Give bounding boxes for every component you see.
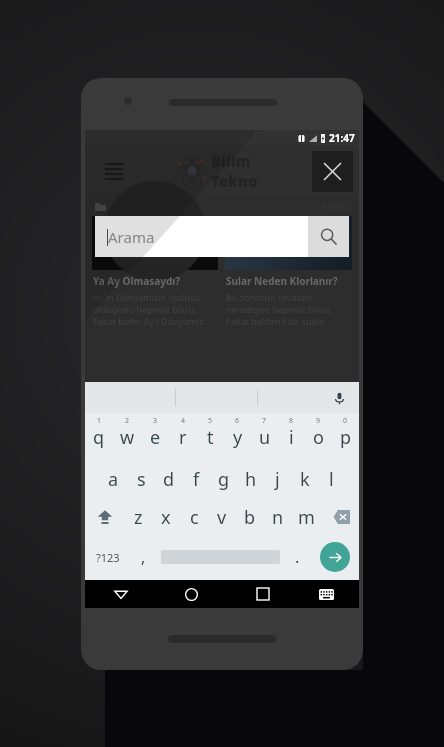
staticText: u xyxy=(259,425,271,450)
staticText: neredeyse hepimiz biliriz. xyxy=(226,303,333,315)
button[interactable]: Back xyxy=(85,580,156,608)
button[interactable]: 2 xyxy=(113,413,141,455)
staticText: Ay'ın Dünyamızın uydusu xyxy=(93,291,200,303)
button[interactable]: k xyxy=(291,455,318,497)
button[interactable]: 7 xyxy=(251,413,278,455)
staticText: f xyxy=(193,467,200,492)
button[interactable]: 1 xyxy=(85,413,113,455)
button[interactable]: j xyxy=(264,455,291,497)
button[interactable]: x xyxy=(152,497,180,537)
staticText: l xyxy=(329,467,334,492)
staticText: Tekno xyxy=(211,171,258,191)
staticText: w xyxy=(120,425,135,450)
staticText: Arama xyxy=(108,227,155,247)
button[interactable]: z xyxy=(124,497,152,537)
button[interactable]: b xyxy=(236,497,264,537)
staticText: e xyxy=(150,425,161,450)
staticText: ?123 xyxy=(96,550,120,565)
button[interactable]: f xyxy=(183,455,210,497)
staticText: c xyxy=(190,505,199,530)
staticText: s xyxy=(137,467,146,492)
staticText: Sular Neden Klorlanır? xyxy=(226,274,338,288)
staticText: 1 xyxy=(97,416,102,426)
button[interactable]: 9 xyxy=(305,413,332,455)
button[interactable]: 4 xyxy=(169,413,197,455)
staticText: 2 xyxy=(125,416,130,426)
button[interactable]: Arama xyxy=(95,216,349,257)
button[interactable]: h xyxy=(237,455,264,497)
staticText: 7 xyxy=(262,416,267,426)
button[interactable]: n xyxy=(264,497,292,537)
button[interactable]: Voice input xyxy=(329,388,349,408)
staticText: x xyxy=(161,505,171,530)
staticText: t xyxy=(207,425,214,450)
staticText: olduğunu hepimiz biliriz. xyxy=(93,303,198,315)
button[interactable]: Shift xyxy=(85,497,124,537)
staticText: v xyxy=(217,505,227,530)
staticText: 21:47 xyxy=(329,131,355,145)
button[interactable]: Menu xyxy=(101,159,127,184)
staticText: z xyxy=(134,505,143,530)
button[interactable]: Home xyxy=(156,580,227,608)
button[interactable]: m xyxy=(292,497,320,537)
staticText: 4 xyxy=(181,416,186,426)
button[interactable]: Ya Ay Olmasaydı? xyxy=(92,216,218,382)
button[interactable]: 8 xyxy=(278,413,305,455)
button[interactable]: . xyxy=(285,537,310,577)
staticText: i xyxy=(289,425,294,450)
button[interactable]: 6 xyxy=(224,413,251,455)
staticText: k xyxy=(300,467,310,492)
staticText: p xyxy=(340,425,352,450)
staticText: b xyxy=(244,505,256,530)
staticText: Fakat bizler Ay'ı Dünyamız xyxy=(93,315,204,327)
button[interactable]: 5 xyxy=(197,413,224,455)
staticText: . xyxy=(295,546,300,568)
staticText: m xyxy=(298,505,315,530)
staticText: 6 xyxy=(235,416,240,426)
button[interactable]: Space xyxy=(156,537,285,577)
button[interactable]: 3 xyxy=(141,413,169,455)
staticText: h xyxy=(245,467,257,492)
staticText: TÜMÜ xyxy=(322,201,349,213)
staticText: , xyxy=(141,546,146,568)
staticText: Bu sorunun cevabını xyxy=(226,291,313,303)
button[interactable]: Backspace xyxy=(320,497,359,537)
button[interactable]: Search xyxy=(308,216,349,257)
button[interactable]: Enter xyxy=(320,542,350,572)
staticText: j xyxy=(275,467,280,492)
button[interactable]: Keyboard switcher xyxy=(298,580,355,608)
button[interactable]: s xyxy=(127,455,155,497)
button[interactable]: a xyxy=(99,455,127,497)
staticText: a xyxy=(108,467,119,492)
staticText: d xyxy=(163,467,175,492)
staticText: g xyxy=(218,467,230,492)
button[interactable]: v xyxy=(208,497,236,537)
staticText: Fakat bakterili bir suyla xyxy=(226,315,324,327)
button[interactable]: c xyxy=(180,497,208,537)
button[interactable]: d xyxy=(155,455,183,497)
staticText: 0 xyxy=(343,416,348,426)
button[interactable]: Sular Neden Klorlanır? xyxy=(225,216,352,382)
staticText: 3 xyxy=(153,416,158,426)
button[interactable]: , xyxy=(131,537,156,577)
staticText: 9 xyxy=(316,416,321,426)
staticText: y xyxy=(233,425,243,450)
button[interactable]: ?123 xyxy=(85,537,131,577)
staticText: r xyxy=(179,425,187,450)
button[interactable]: 0 xyxy=(332,413,359,455)
button[interactable]: g xyxy=(210,455,237,497)
staticText: Ya Ay Olmasaydı? xyxy=(93,274,181,288)
staticText: 8 xyxy=(289,416,294,426)
staticText: n xyxy=(272,505,284,530)
staticText: o xyxy=(313,425,324,450)
button[interactable]: Close xyxy=(312,151,353,192)
staticText: Bilim xyxy=(211,151,251,171)
button[interactable]: Recents xyxy=(227,580,298,608)
staticText: q xyxy=(93,425,105,450)
staticText: 5 xyxy=(208,416,213,426)
button[interactable]: l xyxy=(318,455,345,497)
